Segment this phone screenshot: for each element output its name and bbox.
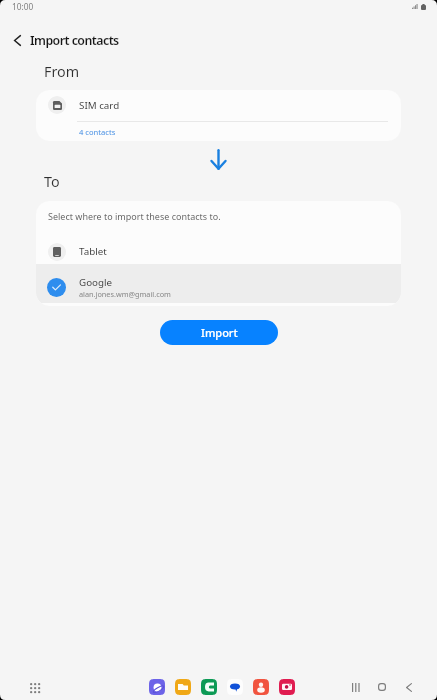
button[interactable]: Back: [399, 677, 419, 697]
staticText: SIM card: [79, 99, 120, 112]
staticText: 10:00: [12, 1, 34, 12]
staticText: Select where to import these contacts to…: [48, 210, 221, 222]
button[interactable]: Messages: [227, 679, 243, 695]
button[interactable]: Internet: [149, 679, 165, 695]
staticText: Tablet: [79, 245, 107, 258]
button[interactable]: Import: [160, 320, 278, 345]
button[interactable]: Back: [4, 27, 30, 53]
staticText: Import: [201, 325, 238, 340]
staticText: alan.jones.wm@gmail.com: [79, 289, 171, 299]
button[interactable]: Camera: [279, 679, 295, 695]
button[interactable]: Home: [372, 677, 392, 697]
button[interactable]: My Files: [175, 679, 191, 695]
button[interactable]: SIM card: [36, 90, 401, 121]
staticText: From: [44, 62, 80, 81]
staticText: To: [44, 172, 60, 191]
button[interactable]: Phone: [201, 679, 217, 695]
staticText: Import contacts: [30, 32, 119, 49]
button[interactable]: Recents: [346, 677, 366, 697]
button[interactable]: Contacts: [253, 679, 269, 695]
button[interactable]: 4 contacts: [79, 127, 116, 137]
button[interactable]: Apps: [25, 678, 44, 697]
button[interactable]: Google: [36, 264, 401, 303]
button[interactable]: Tablet: [36, 233, 401, 264]
staticText: Google: [79, 276, 113, 289]
